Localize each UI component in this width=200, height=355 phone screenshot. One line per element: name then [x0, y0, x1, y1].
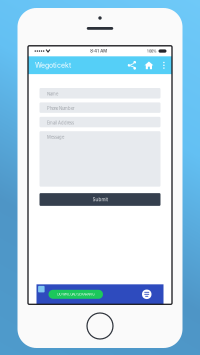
- button[interactable]: More options: [158, 61, 170, 70]
- button[interactable]: Home: [140, 61, 158, 70]
- staticText: Wegoticekt: [35, 61, 71, 69]
- button[interactable]: Email Address: [39, 117, 160, 127]
- staticText: Email Address: [47, 120, 74, 125]
- button[interactable]: Share: [124, 61, 140, 70]
- button[interactable]: Phone Number: [39, 102, 160, 113]
- staticText: Name: [47, 92, 58, 97]
- staticText: 100%: [147, 49, 157, 53]
- staticText: Message: [47, 135, 64, 140]
- button[interactable]: DOWNLOAD SEKARANG: [48, 290, 103, 299]
- button[interactable]: Submit: [39, 193, 160, 206]
- staticText: Submit: [92, 197, 107, 202]
- staticText: Phone Number: [47, 106, 75, 111]
- staticText: 8:41 AM: [90, 48, 107, 54]
- button[interactable]: Name: [39, 88, 160, 98]
- staticText: DOWNLOAD SEKARANG: [57, 292, 94, 296]
